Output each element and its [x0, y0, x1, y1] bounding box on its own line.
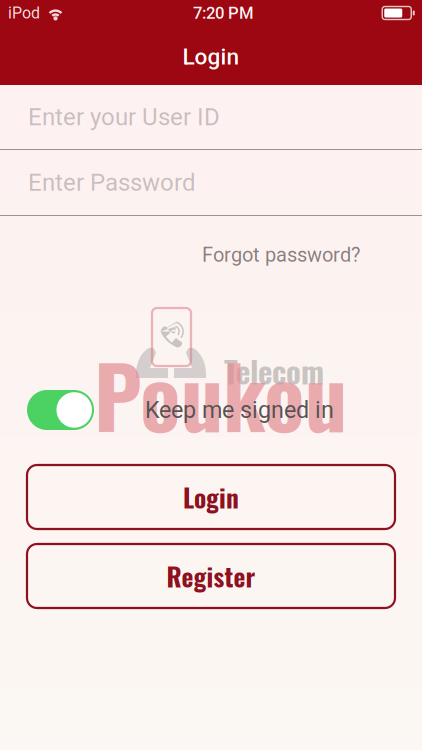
staticText: Telecom [224, 348, 324, 393]
staticText: Login [182, 43, 239, 70]
staticText: Register [166, 557, 255, 595]
button[interactable]: Keep me signed in [27, 390, 94, 430]
staticText: Login [183, 478, 239, 516]
staticText: iPod [8, 4, 40, 22]
staticText: Keep me signed in [145, 396, 334, 424]
button[interactable]: Forgot password? [0, 236, 422, 274]
button[interactable]: Login [27, 465, 395, 529]
staticText: Enter your User ID [28, 103, 220, 131]
staticText: Enter Password [28, 168, 196, 196]
button[interactable]: Register [27, 544, 395, 608]
staticText: Poukou [94, 332, 347, 456]
staticText: 7:20 PM [193, 3, 254, 23]
staticText: Forgot password? [202, 243, 360, 267]
